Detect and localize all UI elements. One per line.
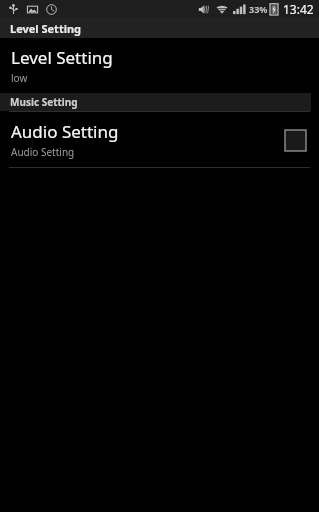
staticText: 33% — [249, 3, 268, 15]
button[interactable]: Audio Setting — [0, 112, 319, 167]
staticText: Audio Setting — [11, 120, 119, 143]
staticText: Audio Setting — [11, 145, 75, 159]
button[interactable]: Audio Setting checkbox — [283, 128, 307, 152]
staticText: Level Setting — [11, 46, 113, 69]
button[interactable]: Level Setting — [0, 38, 319, 93]
staticText: Music Setting — [10, 95, 78, 109]
staticText: Level Setting — [10, 21, 82, 36]
staticText: low — [11, 71, 28, 85]
staticText: 13:42 — [283, 1, 314, 17]
